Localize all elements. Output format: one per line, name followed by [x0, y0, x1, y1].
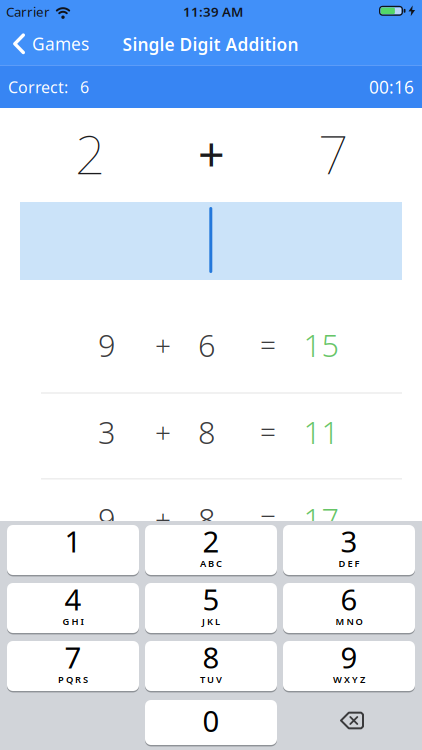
staticText: GHI	[62, 615, 83, 628]
staticText: 3	[98, 412, 116, 452]
staticText: 7	[64, 637, 81, 676]
staticText: Correct:	[8, 76, 68, 98]
staticText: +	[198, 122, 225, 184]
button[interactable]: 6	[283, 583, 415, 633]
button[interactable]: 4	[7, 583, 139, 633]
staticText: +	[155, 413, 171, 451]
staticText: 4	[64, 579, 81, 618]
button[interactable]: Games	[0, 32, 140, 55]
staticText: JKL	[202, 615, 220, 628]
staticText: 5	[202, 579, 219, 618]
staticText: =	[260, 326, 276, 364]
button[interactable]: 2	[145, 525, 277, 575]
button[interactable]: 1	[7, 525, 139, 575]
staticText: 2	[75, 118, 105, 189]
button[interactable]: 5	[145, 583, 277, 633]
button[interactable]: 3	[283, 525, 415, 575]
staticText: 6	[340, 579, 357, 618]
button[interactable]: 9	[283, 641, 415, 691]
button[interactable]	[283, 699, 415, 749]
staticText: Carrier	[6, 3, 50, 20]
staticText: TUV	[200, 673, 222, 686]
staticText: DEF	[338, 557, 359, 570]
staticText: 9	[340, 637, 357, 676]
staticText: 15	[303, 325, 339, 365]
staticText: 3	[340, 521, 357, 560]
staticText: +	[155, 500, 171, 538]
button[interactable]	[20, 202, 402, 280]
staticText: =	[260, 500, 276, 538]
button[interactable]: 0	[145, 700, 277, 745]
staticText: Games	[32, 32, 89, 55]
staticText: 00:16	[369, 75, 414, 98]
staticText: PQRS	[58, 673, 88, 686]
button[interactable]: 8	[145, 641, 277, 691]
staticText: 6	[80, 76, 89, 98]
button[interactable]: 7	[7, 641, 139, 691]
staticText: MNO	[335, 615, 362, 628]
staticText: 11:39 AM	[183, 3, 243, 20]
staticText: 7	[318, 118, 348, 189]
staticText: 9	[98, 325, 116, 365]
staticText: ABC	[200, 557, 222, 570]
staticText: WXYZ	[333, 673, 365, 686]
staticText: 8	[198, 499, 216, 539]
staticText: +	[155, 326, 171, 364]
staticText: 6	[198, 325, 216, 365]
staticText: 2	[202, 521, 219, 560]
staticText: 1	[64, 521, 81, 560]
staticText: 17	[303, 499, 339, 539]
staticText: Single Digit Addition	[122, 33, 298, 56]
staticText: 0	[202, 701, 219, 740]
staticText: 8	[202, 637, 219, 676]
staticText: 11	[303, 412, 339, 452]
staticText: 8	[198, 412, 216, 452]
staticText: 9	[98, 499, 116, 539]
staticText: =	[260, 413, 276, 451]
